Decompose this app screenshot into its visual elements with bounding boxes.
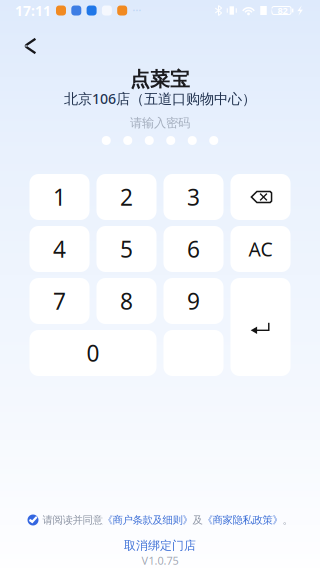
button[interactable]: 1	[29, 174, 89, 220]
staticText: 北京106店（五道口购物中心）	[64, 89, 256, 108]
button[interactable]: 《商家隐私政策》	[202, 513, 282, 526]
staticText: 取消绑定门店	[124, 538, 196, 553]
staticText: AC	[248, 236, 272, 262]
staticText: 。	[282, 513, 292, 526]
staticText: 7	[53, 286, 66, 316]
staticText: 9	[187, 286, 200, 316]
button[interactable]: 8	[96, 278, 156, 324]
staticText: 《商户条款及细则》	[102, 513, 192, 526]
staticText: 点菜宝	[130, 67, 190, 92]
staticText: 5	[120, 234, 133, 264]
staticText: 6	[187, 234, 200, 264]
staticText: 及	[192, 513, 202, 526]
staticText: 3	[187, 182, 200, 212]
button[interactable]: Agree to terms	[27, 514, 38, 525]
staticText: 4	[53, 234, 66, 264]
button[interactable]: 3	[163, 174, 223, 220]
staticText: ···	[132, 2, 141, 19]
button[interactable]: 4	[29, 226, 89, 272]
staticText: 《商家隐私政策》	[202, 513, 282, 526]
staticText: 1	[53, 182, 66, 212]
button[interactable]: 0	[29, 330, 156, 376]
button[interactable]: 5	[96, 226, 156, 272]
staticText: 82	[277, 4, 287, 17]
staticText: 0	[86, 338, 99, 368]
button[interactable]: 7	[29, 278, 89, 324]
staticText: 2	[120, 182, 133, 212]
staticText: 请输入密码	[130, 115, 190, 131]
button[interactable]: 取消绑定门店	[124, 539, 196, 552]
staticText: 请阅读并同意	[42, 513, 102, 526]
button[interactable]: 《商户条款及细则》	[102, 513, 192, 526]
staticText: 8	[120, 286, 133, 316]
button[interactable]: Back	[14, 29, 46, 63]
button[interactable]: 9	[163, 278, 223, 324]
staticText: 17:11	[15, 1, 51, 20]
button[interactable]: 6	[163, 226, 223, 272]
button[interactable]: Enter	[230, 278, 290, 376]
button[interactable]: Delete	[230, 174, 290, 220]
button[interactable]: AC	[230, 226, 290, 272]
button[interactable]: 2	[96, 174, 156, 220]
staticText: V1.0.75	[141, 553, 178, 568]
